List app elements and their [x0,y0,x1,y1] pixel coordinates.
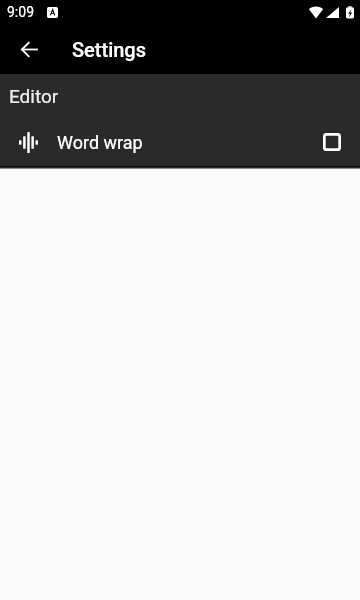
other: Word wrap, off [323,133,341,151]
button[interactable]: Back [4,25,53,74]
staticText: Editor [9,85,59,107]
staticText: Word wrap [57,132,143,153]
staticText: 9:09 [7,4,34,20]
button[interactable]: Word wrap [0,118,360,166]
staticText: Settings [72,38,147,61]
